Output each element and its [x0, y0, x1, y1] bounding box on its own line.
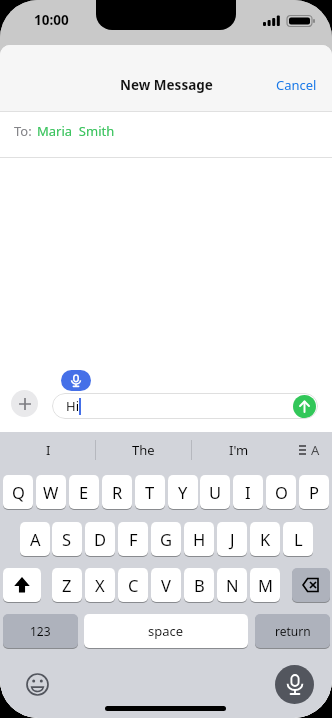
staticText: Y — [178, 481, 188, 503]
staticText: Hi — [66, 397, 79, 415]
staticText: F — [129, 528, 138, 550]
button[interactable]: H — [184, 522, 214, 556]
button[interactable]: L — [283, 522, 313, 556]
staticText: S — [62, 528, 72, 550]
button[interactable]: O — [266, 475, 296, 509]
staticText: A — [30, 528, 41, 550]
staticText: 10:00 — [34, 11, 69, 29]
staticText: N — [226, 574, 239, 596]
button[interactable] — [3, 568, 41, 602]
button[interactable]: Cancel — [276, 76, 317, 94]
button[interactable]: Q — [3, 475, 33, 509]
button[interactable]: S — [52, 522, 82, 556]
staticText: I — [46, 441, 51, 459]
staticText: C — [128, 574, 139, 596]
button[interactable]: T — [135, 475, 165, 509]
button[interactable]: N — [217, 568, 247, 602]
staticText: X — [95, 574, 105, 596]
staticText: New Message — [120, 76, 213, 94]
staticText: Z — [62, 574, 72, 596]
staticText: Q — [12, 481, 25, 503]
staticText: U — [209, 481, 222, 503]
button[interactable]: V — [151, 568, 181, 602]
staticText: B — [194, 574, 205, 596]
button[interactable]: X — [85, 568, 115, 602]
staticText: D — [94, 528, 107, 550]
button[interactable]: B — [184, 568, 214, 602]
button[interactable] — [61, 370, 91, 391]
button[interactable] — [292, 568, 330, 602]
staticText: O — [275, 481, 288, 503]
staticText: I'm — [229, 441, 249, 459]
button[interactable]: To: — [0, 112, 332, 157]
staticText: return — [275, 623, 311, 639]
staticText: J — [230, 528, 235, 550]
button[interactable] — [293, 395, 316, 418]
button[interactable]: F — [118, 522, 148, 556]
button[interactable]: W — [36, 475, 66, 509]
button[interactable]: C — [118, 568, 148, 602]
button[interactable]: J — [217, 522, 247, 556]
button[interactable] — [275, 665, 314, 704]
staticText: P — [309, 481, 319, 503]
button[interactable]: M — [250, 568, 280, 602]
staticText: H — [193, 528, 206, 550]
staticText: L — [294, 528, 303, 550]
button[interactable]: K — [250, 522, 280, 556]
button[interactable]: I — [233, 475, 263, 509]
staticText: K — [260, 528, 271, 550]
staticText: To: — [14, 122, 32, 140]
button[interactable]: D — [85, 522, 115, 556]
button[interactable]: Z — [52, 568, 82, 602]
button[interactable]: R — [102, 475, 132, 509]
staticText: The — [132, 441, 155, 459]
staticText: 123 — [30, 623, 51, 639]
button[interactable]: G — [151, 522, 181, 556]
button[interactable]: space — [84, 614, 248, 648]
button[interactable]: Hi — [52, 393, 318, 419]
staticText: G — [160, 528, 173, 550]
button[interactable]: A — [20, 522, 50, 556]
staticText: E — [79, 481, 89, 503]
staticText: V — [161, 574, 171, 596]
button[interactable]: 123 — [3, 614, 78, 648]
button[interactable]: P — [299, 475, 329, 509]
button[interactable]: E — [69, 475, 99, 509]
staticText: Maria Smith — [37, 122, 115, 140]
button[interactable]: U — [200, 475, 230, 509]
staticText: Cancel — [276, 76, 317, 94]
staticText: I — [245, 481, 251, 503]
button[interactable]: Y — [168, 475, 198, 509]
staticText: T — [145, 481, 155, 503]
button[interactable]: return — [255, 614, 330, 648]
button[interactable]: A — [297, 440, 323, 460]
staticText: R — [112, 481, 123, 503]
staticText: W — [43, 481, 59, 503]
staticText: space — [148, 622, 184, 640]
staticText: M — [258, 574, 273, 596]
button[interactable] — [11, 390, 38, 417]
button[interactable] — [25, 672, 49, 696]
staticText: A — [311, 441, 320, 459]
